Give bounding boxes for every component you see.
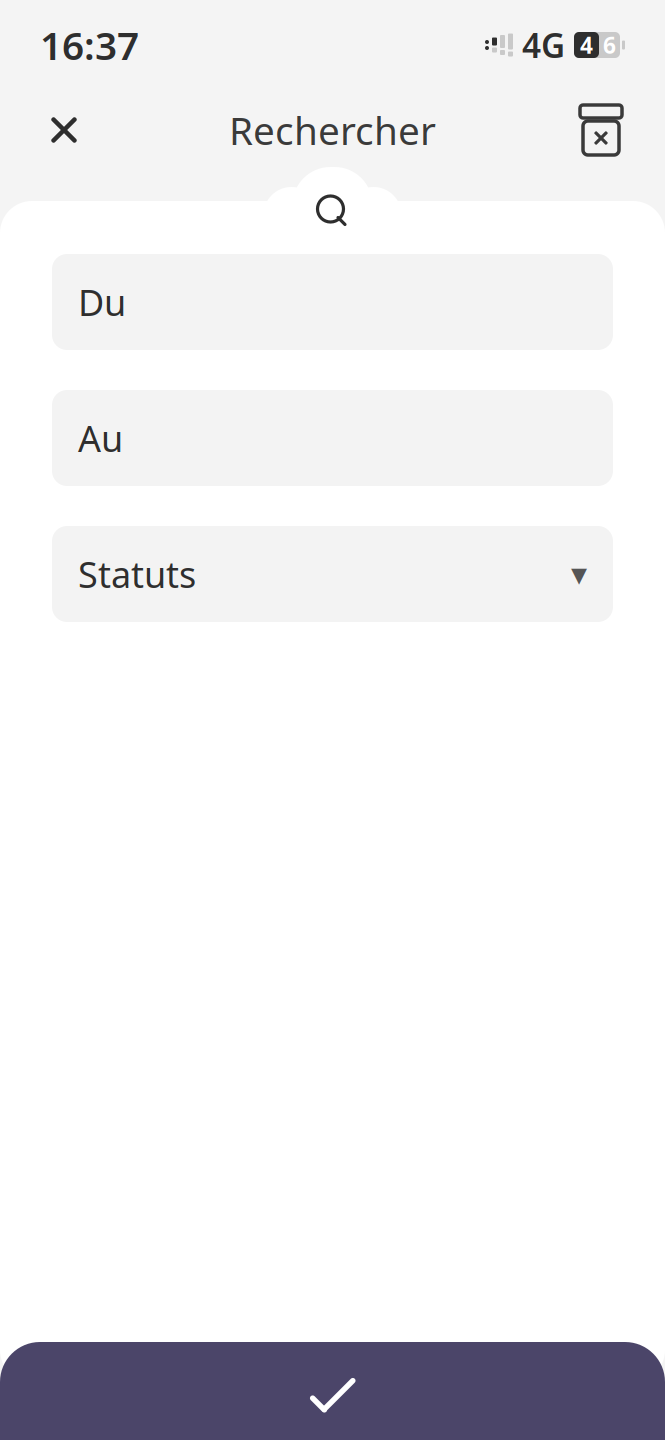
staticText: ▾	[571, 556, 587, 592]
button[interactable]: Valider la recherche	[262, 1361, 402, 1431]
staticText: Statuts	[78, 550, 196, 598]
button[interactable]: Fermer	[34, 95, 94, 165]
button[interactable]: Au	[52, 390, 613, 486]
staticText: 16:37	[40, 19, 139, 71]
staticText: 6	[603, 30, 616, 60]
staticText: Du	[78, 278, 126, 326]
staticText: Rechercher	[229, 104, 436, 156]
button[interactable]: Statuts	[52, 526, 613, 622]
staticText: Au	[78, 414, 123, 462]
staticText: 4G	[522, 23, 565, 67]
staticText: 4	[580, 30, 593, 60]
button[interactable]: Effacer les filtres	[571, 95, 631, 165]
button[interactable]: Du	[52, 254, 613, 350]
